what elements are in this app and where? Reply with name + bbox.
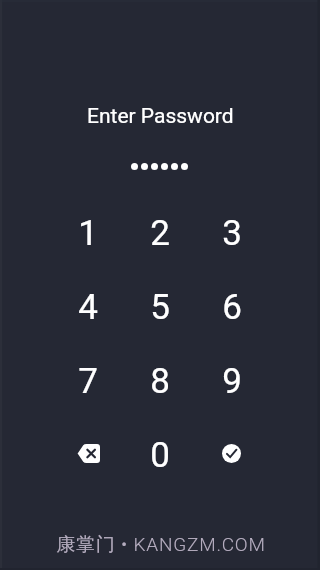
button[interactable]: 2 — [124, 196, 196, 270]
staticText: 9 — [222, 361, 242, 402]
staticText: 2 — [150, 213, 170, 254]
staticText: 5 — [150, 287, 170, 328]
button[interactable]: 1 — [52, 196, 124, 270]
staticText: 1 — [78, 213, 98, 254]
staticText: 6 — [222, 287, 242, 328]
staticText: 0 — [150, 435, 170, 476]
button[interactable]: 4 — [52, 270, 124, 344]
button[interactable]: Confirm — [196, 418, 268, 492]
button[interactable]: 6 — [196, 270, 268, 344]
staticText: Enter Password — [87, 104, 234, 129]
button[interactable]: Backspace — [52, 418, 124, 492]
staticText: 3 — [222, 213, 242, 254]
button[interactable]: 8 — [124, 344, 196, 418]
staticText: 康掌门 • KANGZM.COM — [56, 533, 266, 557]
button[interactable]: 7 — [52, 344, 124, 418]
button[interactable]: 5 — [124, 270, 196, 344]
button[interactable]: 3 — [196, 196, 268, 270]
staticText: 4 — [78, 287, 98, 328]
staticText: 8 — [150, 361, 170, 402]
staticText: 7 — [78, 361, 98, 402]
button[interactable]: 9 — [196, 344, 268, 418]
button[interactable]: 0 — [124, 418, 196, 492]
